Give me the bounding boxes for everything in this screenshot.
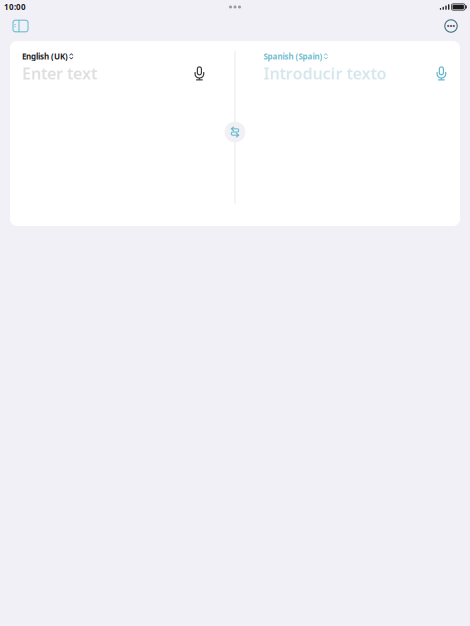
staticText: English (UK) <box>22 51 68 62</box>
button[interactable]: English (UK) <box>10 50 73 63</box>
button[interactable]: Dictate in Spanish <box>433 63 450 84</box>
button[interactable]: Show sidebar <box>5 15 36 37</box>
staticText: Spanish (Spain) <box>263 51 322 62</box>
staticText: Enter text <box>22 63 97 84</box>
staticText: Introducir texto <box>263 63 386 84</box>
button[interactable]: Dictate in English <box>191 63 208 84</box>
staticText: 10:00 <box>4 2 26 12</box>
button[interactable]: Spanish (Spain) <box>235 50 328 63</box>
button[interactable]: More options <box>438 15 464 37</box>
button[interactable]: Enter text <box>10 63 191 84</box>
button[interactable]: Introducir texto <box>235 63 433 84</box>
button[interactable]: Swap languages <box>221 118 249 146</box>
